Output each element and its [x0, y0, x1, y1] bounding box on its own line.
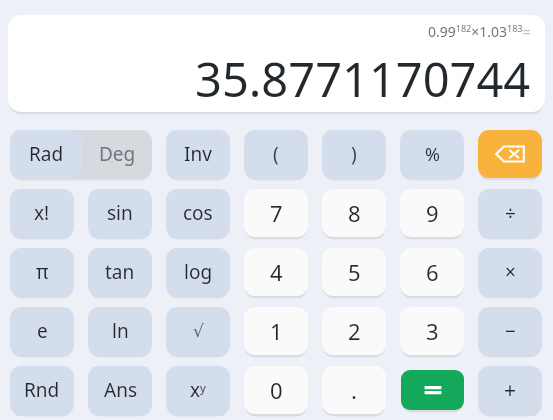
button[interactable]: √: [166, 307, 230, 355]
staticText: ×: [505, 259, 516, 285]
button[interactable]: Inv: [166, 130, 230, 178]
button[interactable]: Equals: [401, 370, 464, 410]
staticText: 4: [270, 257, 283, 287]
button[interactable]: xy: [166, 366, 230, 414]
button[interactable]: ×: [478, 248, 542, 296]
button[interactable]: %: [400, 130, 464, 178]
staticText: Inv: [184, 141, 212, 167]
staticText: π: [36, 259, 49, 285]
staticText: %: [425, 142, 440, 167]
button[interactable]: ln: [88, 307, 152, 355]
button[interactable]: x!: [10, 189, 74, 237]
staticText: √: [193, 321, 204, 341]
staticText: .: [351, 375, 357, 405]
button[interactable]: 9: [400, 189, 464, 237]
button[interactable]: Rnd: [10, 366, 74, 414]
button[interactable]: 5: [322, 248, 386, 296]
staticText: 2: [348, 316, 361, 346]
staticText: 8: [348, 198, 361, 228]
staticText: ): [351, 141, 357, 167]
button[interactable]: 2: [322, 307, 386, 355]
button[interactable]: e: [10, 307, 74, 355]
staticText: Ans: [104, 377, 137, 403]
staticText: 0.99182×1.03183=: [428, 22, 531, 41]
staticText: Rnd: [24, 377, 60, 403]
button[interactable]: ÷: [478, 189, 542, 237]
button[interactable]: 4: [244, 248, 308, 296]
staticText: 35.8771170744: [195, 47, 531, 108]
button[interactable]: Ans: [88, 366, 152, 414]
staticText: −: [505, 318, 516, 344]
button[interactable]: 1: [244, 307, 308, 355]
staticText: tan: [105, 259, 135, 285]
button[interactable]: 3: [400, 307, 464, 355]
button[interactable]: log: [166, 248, 230, 296]
button[interactable]: Backspace: [478, 130, 542, 178]
staticText: 1: [270, 316, 283, 346]
staticText: sin: [107, 200, 133, 226]
staticText: 3: [426, 316, 439, 346]
staticText: 0: [270, 375, 283, 405]
staticText: ÷: [505, 200, 516, 226]
button[interactable]: .: [322, 366, 386, 414]
staticText: 7: [270, 198, 283, 228]
staticText: +: [504, 376, 517, 405]
button[interactable]: Rad: [10, 130, 82, 178]
staticText: ln: [112, 318, 129, 344]
button[interactable]: 8: [322, 189, 386, 237]
button[interactable]: π: [10, 248, 74, 296]
staticText: x!: [34, 200, 50, 226]
staticText: Rad: [29, 141, 64, 167]
button[interactable]: 0: [244, 366, 308, 414]
button[interactable]: cos: [166, 189, 230, 237]
button[interactable]: (: [244, 130, 308, 178]
staticText: e: [37, 318, 48, 344]
staticText: 6: [426, 257, 439, 287]
staticText: xy: [190, 377, 206, 403]
button[interactable]: −: [478, 307, 542, 355]
button[interactable]: ): [322, 130, 386, 178]
button[interactable]: 6: [400, 248, 464, 296]
staticText: cos: [183, 200, 213, 226]
button[interactable]: Deg: [82, 130, 152, 178]
button[interactable]: +: [478, 366, 542, 414]
button[interactable]: sin: [88, 189, 152, 237]
staticText: 9: [426, 198, 439, 228]
button[interactable]: 7: [244, 189, 308, 237]
staticText: 5: [348, 257, 361, 287]
button[interactable]: tan: [88, 248, 152, 296]
staticText: log: [184, 259, 213, 285]
staticText: Deg: [99, 141, 136, 167]
staticText: (: [273, 141, 279, 167]
